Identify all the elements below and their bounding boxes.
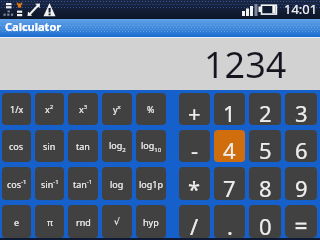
staticText: 1 — [223, 98, 236, 125]
button[interactable]: π — [35, 205, 64, 238]
staticText: log — [110, 178, 124, 190]
button[interactable]: sin — [35, 130, 64, 162]
button[interactable]: tan-1 — [68, 167, 98, 200]
button[interactable]: log2 — [102, 130, 132, 162]
button[interactable]: 3 — [285, 93, 317, 125]
staticText: 5 — [259, 135, 272, 162]
button[interactable]: sin-1 — [35, 167, 64, 200]
button[interactable]: hyp — [136, 205, 166, 238]
staticText: 1/x — [10, 103, 24, 115]
staticText: 8 — [259, 173, 272, 200]
staticText: x2 — [45, 103, 54, 115]
button[interactable]: 1 — [214, 93, 245, 125]
staticText: x3 — [79, 103, 88, 115]
staticText: sin — [43, 140, 56, 152]
staticText: 6 — [295, 135, 308, 162]
button[interactable]: log10 — [136, 130, 166, 162]
button[interactable]: e — [2, 205, 31, 238]
button[interactable]: log1p — [136, 167, 166, 200]
staticText: * — [188, 173, 201, 200]
button[interactable]: x2 — [35, 93, 64, 125]
staticText: 1234 — [204, 40, 287, 89]
staticText: 0 — [259, 211, 272, 238]
button[interactable]: x3 — [68, 93, 98, 125]
button[interactable]: 1/x — [2, 93, 31, 125]
button[interactable]: + — [179, 93, 210, 125]
staticText: 4 — [223, 135, 236, 162]
button[interactable]: cos — [2, 130, 31, 162]
staticText: / — [190, 211, 199, 238]
button[interactable]: rnd — [68, 205, 98, 238]
staticText: e — [14, 216, 20, 228]
staticText: π — [47, 216, 53, 228]
button[interactable]: / — [179, 205, 210, 238]
staticText: yx — [113, 103, 121, 115]
staticText: 9 — [295, 173, 308, 200]
button[interactable]: √ — [102, 205, 132, 238]
button[interactable]: 0 — [249, 205, 281, 238]
staticText: hyp — [143, 216, 159, 228]
staticText: log1p — [139, 178, 163, 190]
staticText: log10 — [141, 139, 162, 154]
staticText: . — [227, 211, 233, 238]
button[interactable]: 6 — [285, 130, 317, 162]
button[interactable]: 4 — [214, 130, 245, 162]
staticText: tan — [76, 140, 90, 152]
staticText: - — [191, 135, 199, 162]
button[interactable]: log — [102, 167, 132, 200]
button[interactable]: 2 — [249, 93, 281, 125]
button[interactable]: 5 — [249, 130, 281, 162]
staticText: + — [188, 98, 201, 125]
staticText: 2 — [259, 98, 272, 125]
button[interactable]: 9 — [285, 167, 317, 200]
button[interactable]: * — [179, 167, 210, 200]
button[interactable]: yx — [102, 93, 132, 125]
button[interactable]: - — [179, 130, 210, 162]
button[interactable]: 8 — [249, 167, 281, 200]
staticText: 14:01 — [284, 0, 318, 18]
staticText: tan-1 — [73, 178, 93, 190]
staticText: √ — [114, 217, 120, 227]
staticText: rnd — [76, 216, 91, 228]
button[interactable]: 7 — [214, 167, 245, 200]
button[interactable]: % — [136, 93, 166, 125]
staticText: sin-1 — [41, 178, 59, 190]
staticText: 3 — [295, 98, 308, 125]
staticText: 7 — [223, 173, 236, 200]
staticText: cos-1 — [7, 178, 27, 190]
staticText: log2 — [109, 139, 126, 154]
staticText: Calculator — [5, 19, 62, 34]
button[interactable]: tan — [68, 130, 98, 162]
button[interactable]: Equals — [285, 205, 317, 238]
staticText: cos — [9, 140, 24, 152]
button[interactable]: cos-1 — [2, 167, 31, 200]
staticText: % — [147, 103, 155, 115]
button[interactable]: . — [214, 205, 245, 238]
